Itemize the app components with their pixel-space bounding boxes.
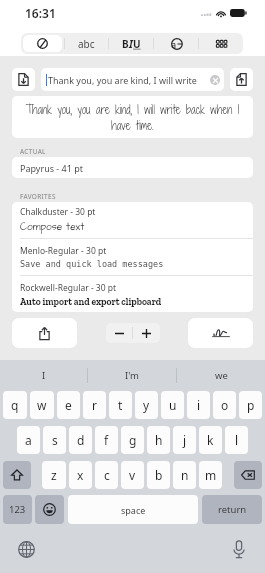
staticText: i	[197, 397, 201, 413]
staticText: j	[183, 432, 187, 448]
button[interactable]: e	[57, 391, 80, 419]
button[interactable]: v	[121, 461, 144, 489]
button[interactable]: I	[0, 367, 87, 384]
button[interactable]: u	[161, 391, 184, 419]
button[interactable]: z	[42, 461, 66, 489]
button[interactable]: Thank you, you are kind, I will write	[41, 68, 224, 91]
button[interactable]: Shift	[3, 461, 31, 489]
button[interactable]: a	[17, 426, 40, 454]
button[interactable]: m	[199, 461, 222, 489]
button[interactable]: Numbers	[3, 495, 32, 524]
staticText: p	[247, 397, 255, 413]
staticText: v	[129, 467, 136, 483]
button[interactable]: q	[3, 391, 27, 419]
staticText: a	[171, 38, 177, 50]
button[interactable]: Export	[230, 68, 253, 91]
staticText: k	[207, 432, 214, 448]
button[interactable]: Menlo-Regular - 30 pt	[12, 239, 253, 275]
staticText: q	[11, 397, 19, 413]
button[interactable]: g	[121, 426, 144, 454]
staticText: u	[169, 397, 177, 413]
staticText: ACTUAL	[20, 147, 46, 156]
staticText: U	[133, 37, 141, 51]
staticText: o	[221, 397, 229, 413]
staticText: I	[129, 37, 133, 51]
staticText: f	[104, 432, 109, 448]
button[interactable]: d	[69, 426, 92, 454]
button[interactable]: w	[30, 391, 54, 419]
staticText: g	[129, 432, 137, 448]
button[interactable]: Decrease size	[106, 323, 132, 343]
button[interactable]: we	[177, 367, 265, 384]
button[interactable]: Import	[12, 68, 35, 91]
button[interactable]: Backspace	[234, 461, 262, 489]
button[interactable]: y	[135, 391, 158, 419]
button[interactable]: Chalkduster - 30 pt	[12, 202, 253, 238]
button[interactable]: k	[199, 426, 222, 454]
staticText: 123	[9, 503, 26, 516]
button[interactable]: p	[239, 391, 262, 419]
button[interactable]: x	[69, 461, 92, 489]
staticText: Thank you, you are kind, I will write ba…	[21, 102, 244, 133]
button[interactable]: Papyrus - 41 pt	[12, 157, 253, 178]
button[interactable]: space	[68, 495, 198, 524]
button[interactable]: Bold italic underline	[109, 33, 153, 54]
staticText: 16:31	[25, 5, 56, 21]
button[interactable]: j	[173, 426, 196, 454]
staticText: m	[205, 467, 217, 483]
button[interactable]: o	[213, 391, 236, 419]
button[interactable]: Character style	[154, 33, 198, 54]
staticText: Save and quick load messages	[20, 259, 164, 269]
button[interactable]: Signature	[188, 318, 253, 348]
staticText: r	[92, 397, 97, 413]
button[interactable]: t	[109, 391, 132, 419]
staticText: a	[25, 432, 32, 448]
button[interactable]: h	[147, 426, 170, 454]
button[interactable]: Emoji	[35, 495, 64, 524]
staticText: I	[42, 369, 46, 382]
button[interactable]: No style	[23, 35, 62, 52]
button[interactable]: i	[187, 391, 210, 419]
staticText: return	[218, 503, 247, 516]
staticText: Auto import and export clipboard	[20, 296, 162, 307]
staticText: Thank you, you are kind, I will write	[48, 74, 197, 86]
staticText: Chalkduster - 30 pt	[20, 206, 96, 218]
button[interactable]: Return	[202, 495, 262, 524]
staticText: Compose text	[20, 220, 85, 234]
button[interactable]: l	[225, 426, 248, 454]
button[interactable]: Rockwell-Regular - 30 pt	[12, 276, 253, 312]
button[interactable]: b	[147, 461, 170, 489]
button[interactable]: I'm	[88, 367, 176, 384]
button[interactable]: r	[83, 391, 106, 419]
button[interactable]: Increase size	[133, 323, 160, 343]
staticText: B	[122, 37, 129, 51]
staticText: t	[118, 397, 123, 413]
button[interactable]: Change keyboard	[10, 533, 42, 565]
staticText: n	[181, 467, 189, 483]
staticText: Menlo-Regular - 30 pt	[20, 245, 107, 257]
button[interactable]: abc	[65, 33, 108, 54]
staticText: abc	[78, 37, 95, 51]
button[interactable]: Thank you, you are kind, I will write ba…	[12, 96, 253, 138]
staticText: e	[65, 397, 72, 413]
staticText: w	[37, 397, 47, 413]
button[interactable]: Dictate	[223, 533, 255, 565]
staticText: I'm	[125, 369, 139, 382]
button[interactable]: More options	[199, 33, 243, 54]
staticText: Rockwell-Regular - 30 pt	[20, 282, 117, 294]
staticText: s	[52, 432, 58, 448]
button[interactable]: f	[95, 426, 118, 454]
staticText: h	[155, 432, 163, 448]
staticText: we	[215, 369, 228, 382]
staticText: c	[104, 467, 110, 483]
button[interactable]: s	[43, 426, 66, 454]
staticText: b	[155, 467, 163, 483]
staticText: d	[77, 432, 85, 448]
button[interactable]: c	[95, 461, 118, 489]
button[interactable]: n	[173, 461, 196, 489]
button[interactable]: Clear text	[210, 75, 220, 85]
staticText: x	[77, 467, 84, 483]
staticText: Papyrus - 41 pt	[20, 162, 84, 174]
button[interactable]: Share	[12, 318, 77, 348]
staticText: l	[235, 432, 239, 448]
